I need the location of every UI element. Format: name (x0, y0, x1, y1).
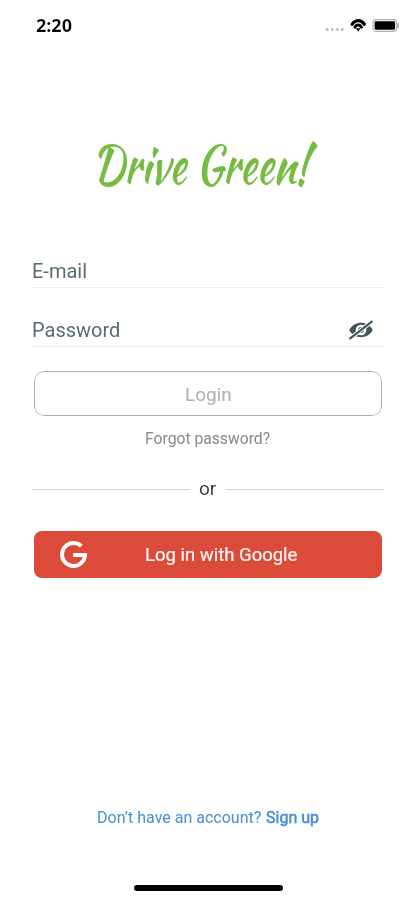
staticText: or (199, 477, 217, 499)
staticText: Don’t have an account? (97, 808, 266, 827)
button[interactable]: Log in with Google (34, 531, 382, 578)
staticText: Sign up (266, 808, 319, 827)
button[interactable]: Don’t have an account? (93, 805, 323, 830)
staticText: Password (32, 318, 121, 341)
staticText: 2:20 (36, 13, 72, 38)
button[interactable]: Login (34, 371, 382, 416)
other: Log in with Google (60, 541, 87, 568)
button[interactable]: Forgot password? (141, 427, 275, 449)
staticText: E-mail (32, 259, 88, 282)
staticText: Log in with Google (145, 544, 298, 566)
staticText: Login (185, 383, 232, 405)
staticText: Drive Green! (92, 127, 309, 202)
button[interactable]: Show password (348, 316, 384, 346)
